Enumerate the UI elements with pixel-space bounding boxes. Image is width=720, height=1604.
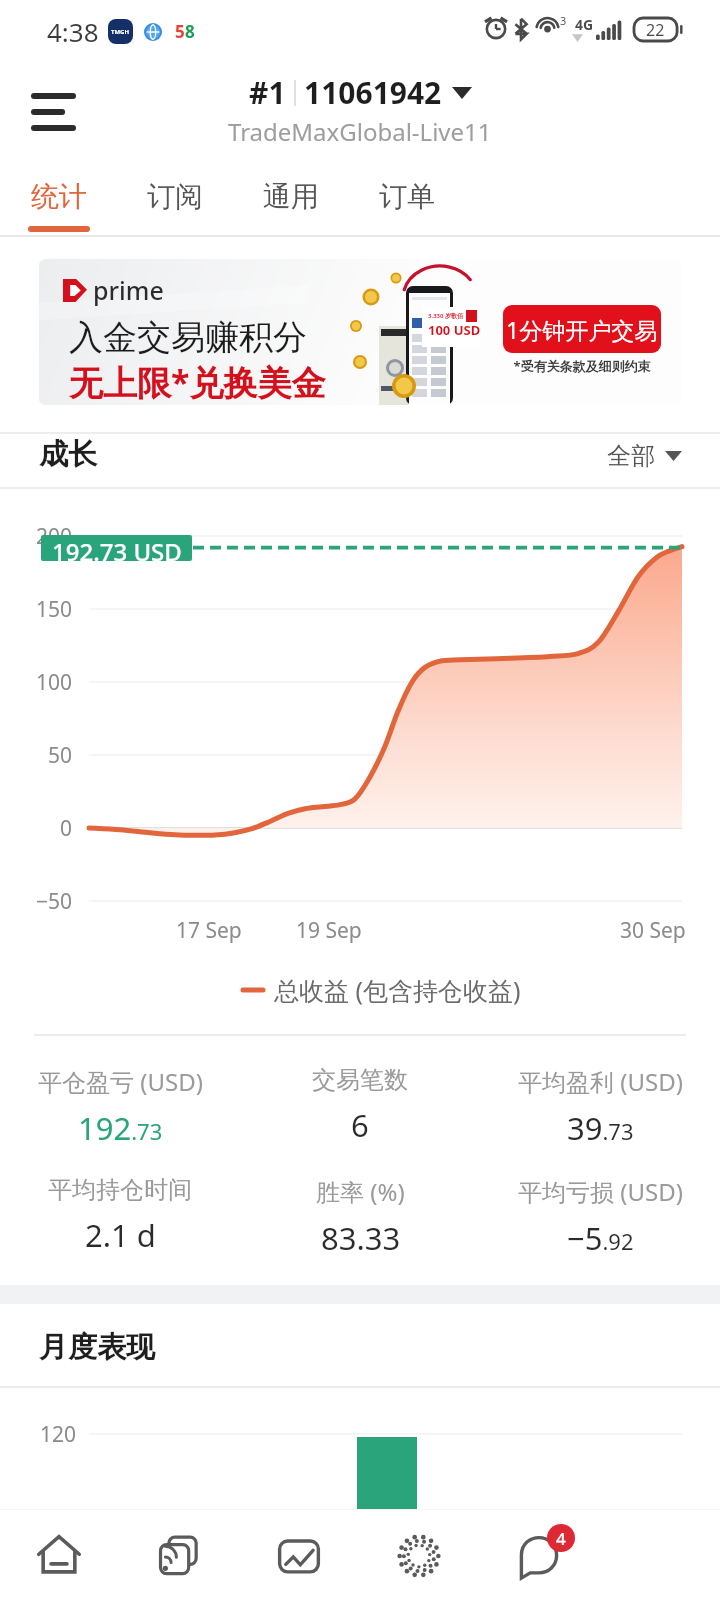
staticText: 胜率 (%) <box>316 1175 405 1208</box>
staticText: prime <box>93 273 164 307</box>
staticText: 平均持仓时间 <box>48 1175 192 1205</box>
staticText: 订单 <box>379 179 435 214</box>
staticText: 通用 <box>263 179 319 214</box>
staticText: 平均亏损 (USD) <box>518 1175 683 1208</box>
button[interactable]: 通用 <box>233 160 349 237</box>
staticText: 2.1 d <box>85 1214 156 1256</box>
button[interactable]: Chat <box>479 1509 599 1604</box>
staticText: 192.73 <box>78 1107 163 1149</box>
staticText: 入金交易赚积分 <box>69 316 307 359</box>
staticText: *受有关条款及细则约束 <box>503 357 661 375</box>
staticText: 平仓盈亏 (USD) <box>38 1065 203 1098</box>
staticText: 39.73 <box>567 1107 634 1149</box>
staticText: 3 <box>560 13 567 28</box>
staticText: 192.73 USD <box>52 535 182 561</box>
button[interactable]: Discover <box>359 1509 479 1604</box>
button[interactable]: #1 <box>228 72 492 148</box>
button[interactable]: Menu <box>13 82 93 142</box>
button[interactable]: prime <box>39 259 681 405</box>
staticText: −5.92 <box>567 1217 634 1259</box>
button[interactable]: 统计 <box>1 160 117 237</box>
button[interactable]: Feed <box>119 1509 239 1604</box>
staticText: 17 Sep <box>176 916 242 945</box>
staticText: 4G <box>575 15 594 34</box>
staticText: 30 Sep <box>620 916 686 945</box>
button[interactable]: 1分钟开户交易 <box>503 305 661 353</box>
staticText: TMGH <box>111 28 130 36</box>
staticText: 8 <box>185 20 195 43</box>
staticText: 成长 <box>39 436 97 473</box>
staticText: 统计 <box>31 179 87 214</box>
staticText: 4 <box>556 1527 566 1550</box>
button[interactable]: 订阅 <box>117 160 233 237</box>
staticText: 平均盈利 (USD) <box>518 1065 683 1098</box>
button[interactable]: 全部 <box>607 441 682 471</box>
staticText: 150 <box>0 595 72 624</box>
staticText: 100 USD <box>428 321 481 339</box>
staticText: 83.33 <box>321 1217 401 1259</box>
staticText: 5 <box>175 20 185 43</box>
staticText: 0 <box>0 814 72 843</box>
staticText: 3,330 岁歌佰 <box>428 312 463 320</box>
staticText: 总收益 (包含持仓收益) <box>274 973 521 1007</box>
staticText: TradeMaxGlobal-Live11 <box>228 115 492 148</box>
staticText: −50 <box>0 887 72 916</box>
staticText: 4:38 <box>47 14 99 49</box>
staticText: 19 Sep <box>296 916 362 945</box>
staticText: 200 <box>0 522 72 551</box>
staticText: 22 <box>646 19 665 41</box>
staticText: 交易笔数 <box>312 1065 408 1095</box>
staticText: 120 <box>0 1420 76 1449</box>
button[interactable]: 订单 <box>349 160 465 237</box>
staticText: #1 <box>249 72 286 113</box>
staticText: 100 <box>0 668 72 697</box>
staticText: 全部 <box>607 441 655 471</box>
button[interactable]: Home <box>0 1509 119 1604</box>
staticText: 无上限*兑换美金 <box>69 359 326 405</box>
button[interactable]: Chart <box>239 1509 359 1604</box>
staticText: 月度表现 <box>39 1329 155 1366</box>
staticText: 订阅 <box>147 179 203 214</box>
staticText: 50 <box>0 741 72 770</box>
staticText: 6 <box>351 1104 369 1146</box>
staticText: 1分钟开户交易 <box>506 314 658 345</box>
staticText: 11061942 <box>304 72 442 113</box>
